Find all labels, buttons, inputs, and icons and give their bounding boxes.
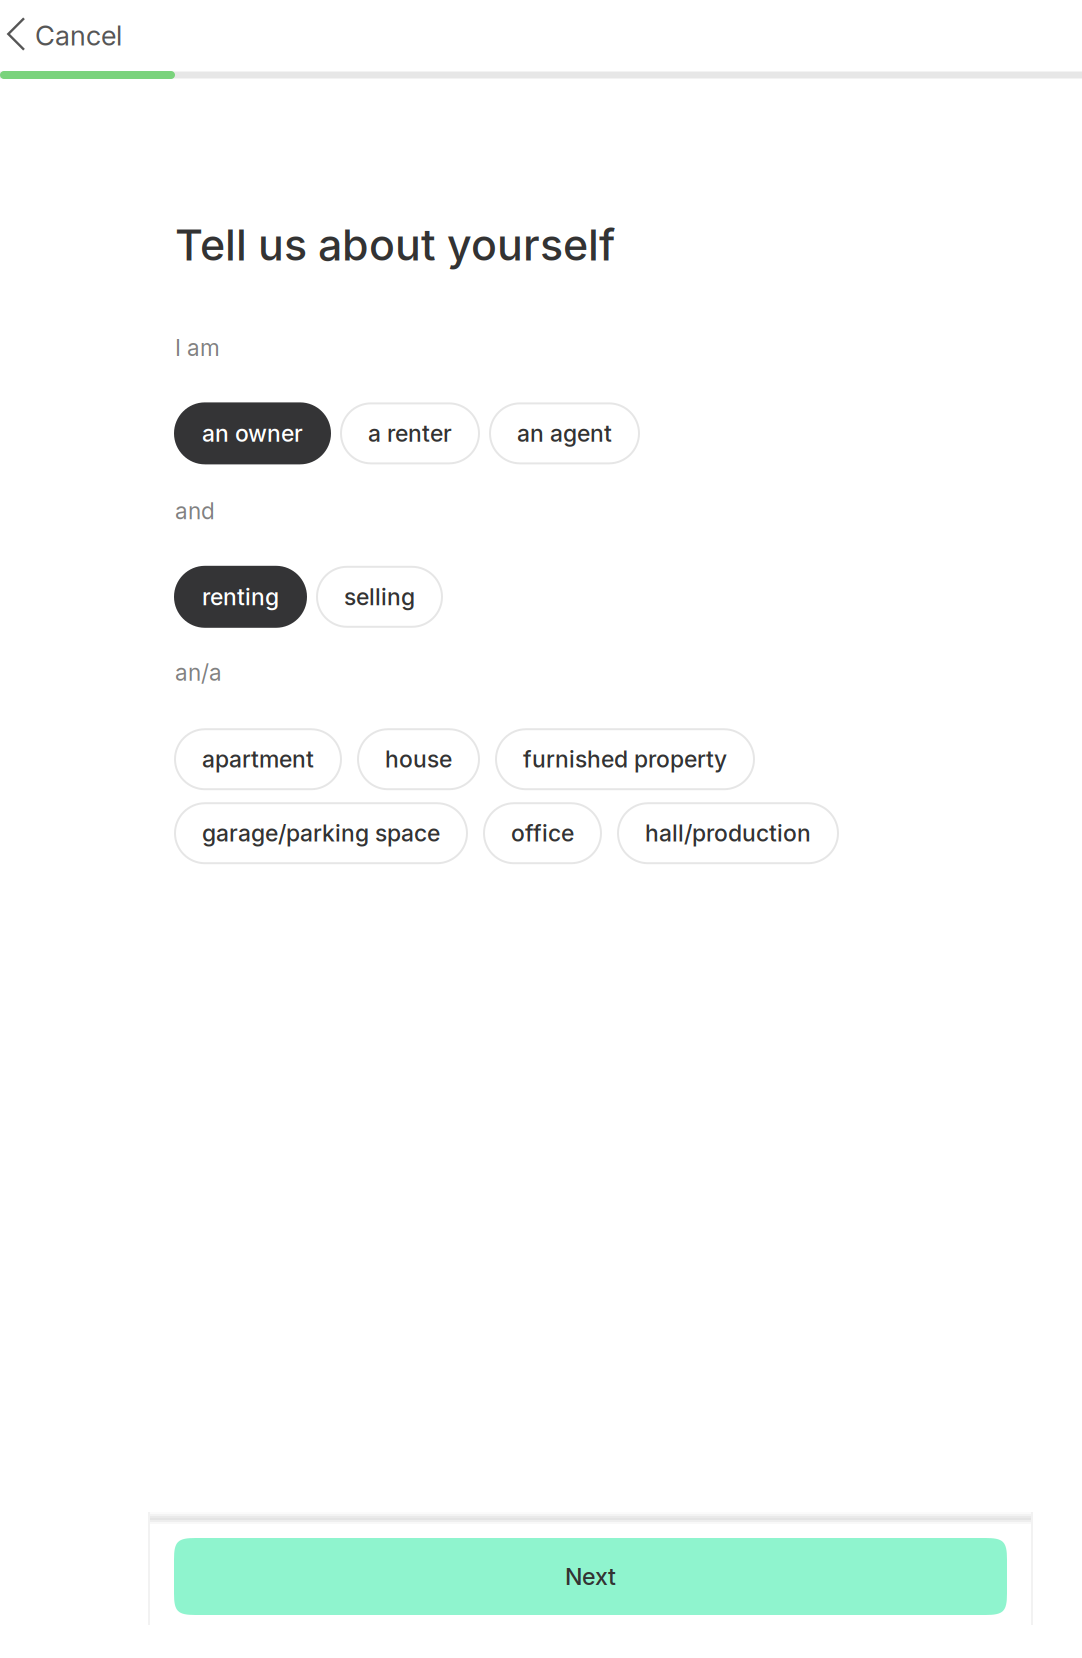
staticText: apartment (202, 745, 314, 773)
staticText: selling (344, 583, 415, 611)
button[interactable]: house (358, 729, 479, 789)
button[interactable]: an owner (175, 403, 330, 463)
staticText: and (175, 497, 215, 525)
button[interactable]: garage/parking space (175, 803, 467, 863)
staticText: furnished property (523, 745, 727, 773)
button[interactable]: furnished property (496, 729, 754, 789)
staticText: an agent (517, 419, 612, 447)
staticText: house (385, 745, 452, 773)
staticText: Cancel (35, 19, 122, 52)
staticText: Next (565, 1562, 616, 1591)
button[interactable]: an agent (490, 403, 639, 463)
staticText: I am (175, 334, 220, 361)
button[interactable]: selling (317, 567, 442, 627)
staticText: garage/parking space (202, 819, 440, 847)
button[interactable]: renting (175, 567, 306, 627)
button[interactable]: a renter (341, 403, 479, 463)
staticText: office (511, 819, 574, 847)
staticText: a renter (368, 419, 452, 447)
staticText: an owner (202, 419, 303, 447)
button[interactable]: apartment (175, 729, 341, 789)
staticText: Tell us about yourself (175, 219, 615, 271)
button[interactable]: office (484, 803, 601, 863)
button[interactable]: Cancel (0, 0, 122, 71)
staticText: hall/production (645, 819, 811, 847)
staticText: an/a (175, 659, 222, 686)
button[interactable]: Next (174, 1538, 1007, 1615)
staticText: renting (202, 583, 279, 611)
button[interactable]: hall/production (618, 803, 838, 863)
